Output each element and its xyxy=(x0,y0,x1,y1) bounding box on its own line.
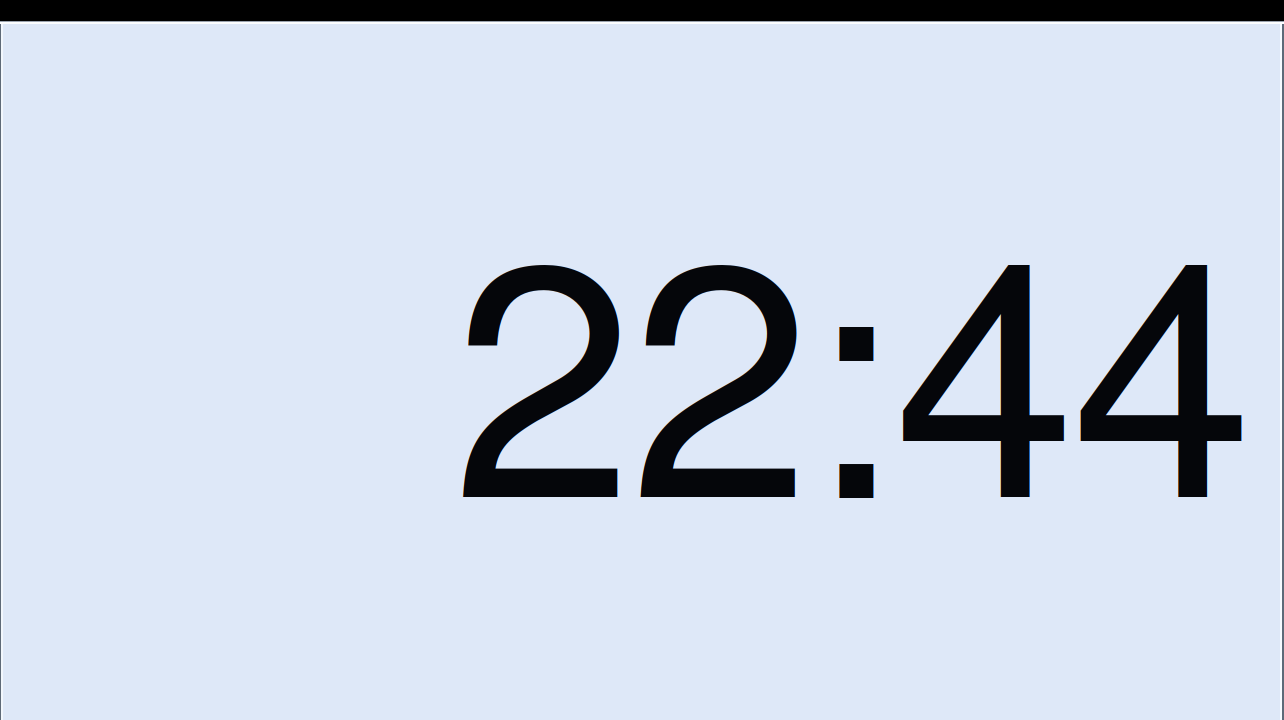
staticText: : xyxy=(811,123,902,591)
button[interactable]: Current time, 22:44 xyxy=(452,265,1230,498)
staticText: 44 xyxy=(894,122,1253,590)
staticText: 22 xyxy=(452,122,811,590)
